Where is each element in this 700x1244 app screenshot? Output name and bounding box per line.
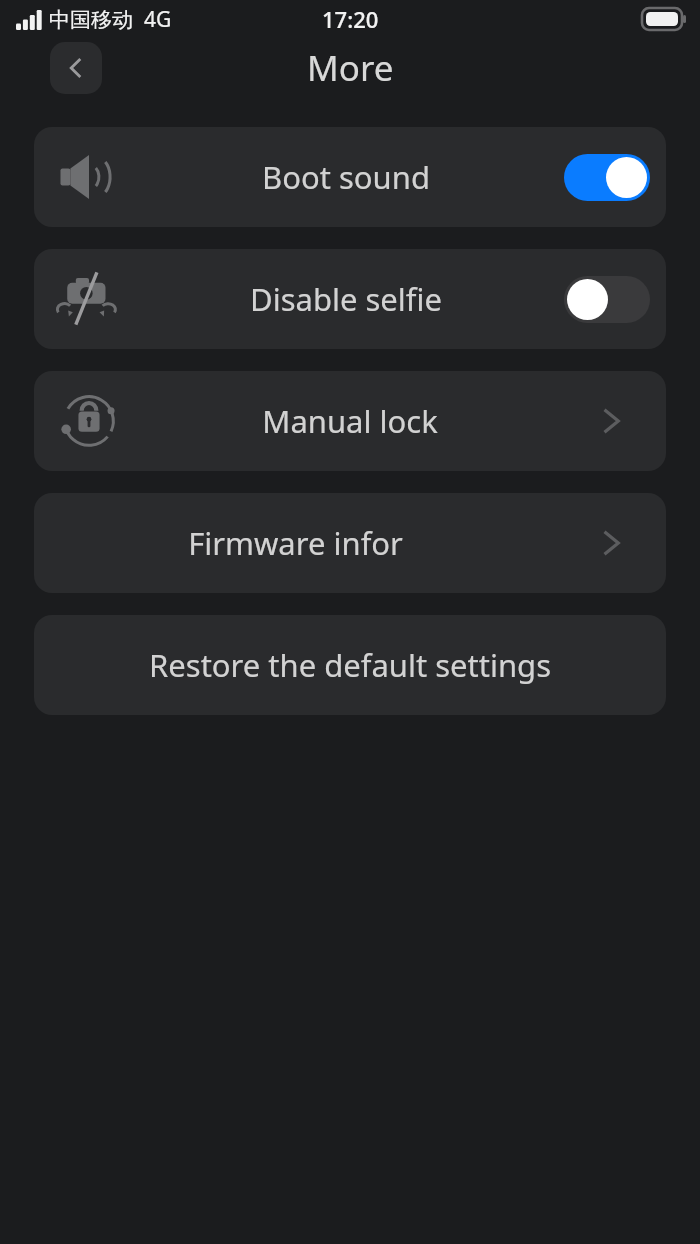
- staticText: Boot sound: [262, 156, 430, 198]
- button[interactable]: Boot sound: [34, 127, 666, 227]
- button[interactable]: Restore the default settings: [34, 615, 666, 715]
- staticText: Manual lock: [262, 400, 438, 442]
- staticText: 中国移动: [49, 7, 133, 33]
- staticText: Disable selfie: [250, 278, 442, 320]
- button[interactable]: Manual lock: [34, 371, 666, 471]
- staticText: 4G: [144, 5, 172, 34]
- staticText: 17:20: [322, 4, 379, 34]
- staticText: More: [307, 44, 394, 92]
- button[interactable]: Back: [50, 42, 102, 94]
- button[interactable]: Disable selfie: [34, 249, 666, 349]
- button[interactable]: Firmware infor: [34, 493, 666, 593]
- button[interactable]: Toggle off: [564, 276, 650, 323]
- button[interactable]: Toggle on: [564, 154, 650, 201]
- staticText: Firmware infor: [188, 522, 403, 564]
- staticText: Restore the default settings: [149, 644, 551, 686]
